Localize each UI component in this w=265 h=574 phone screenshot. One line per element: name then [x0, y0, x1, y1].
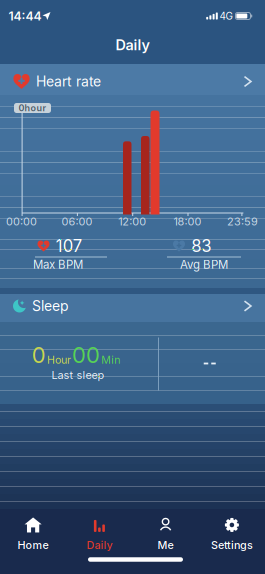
staticText: Avg BPM — [180, 258, 228, 271]
staticText: 83 — [191, 236, 211, 256]
staticText: 18:00 — [173, 215, 201, 228]
staticText: 0hour — [18, 102, 46, 113]
staticText: Max BPM — [33, 258, 83, 271]
staticText: 06:00 — [61, 215, 92, 228]
staticText: Settings — [211, 538, 253, 552]
staticText: Min — [101, 353, 120, 366]
staticText: Last sleep — [51, 368, 104, 382]
staticText: Sleep — [32, 297, 69, 314]
staticText: 14:44 — [8, 9, 41, 23]
staticText: Daily — [86, 538, 112, 552]
staticText: 107 — [56, 236, 82, 256]
button[interactable]: Home — [0, 518, 66, 549]
staticText: Hour — [47, 353, 71, 366]
staticText: 00:00 — [6, 215, 37, 228]
button[interactable]: Heart rate — [0, 64, 265, 288]
staticText: Daily — [115, 36, 149, 54]
staticText: Heart rate — [36, 73, 101, 90]
staticText: 00 — [72, 342, 100, 368]
button[interactable]: Settings — [199, 518, 265, 549]
button[interactable]: Sleep — [0, 294, 265, 404]
staticText: 4G — [219, 10, 232, 22]
button[interactable]: Me — [133, 518, 199, 549]
button[interactable]: Daily — [66, 518, 132, 549]
staticText: 12:00 — [118, 215, 146, 228]
staticText: Home — [18, 538, 49, 552]
staticText: 23:59 — [227, 215, 258, 228]
staticText: Me — [158, 538, 174, 552]
staticText: 0 — [32, 342, 46, 368]
